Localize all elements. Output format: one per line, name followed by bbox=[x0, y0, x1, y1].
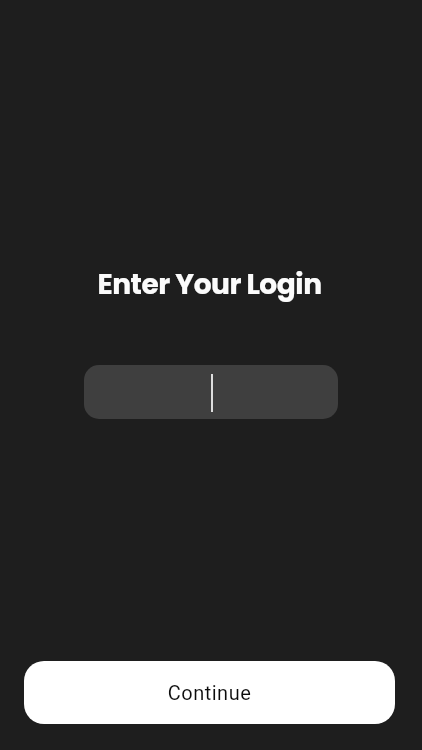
button[interactable]: Login input field bbox=[84, 365, 338, 419]
staticText: Enter Your Login bbox=[97, 265, 322, 304]
button[interactable]: Continue bbox=[24, 661, 395, 724]
staticText: Continue bbox=[24, 681, 395, 704]
